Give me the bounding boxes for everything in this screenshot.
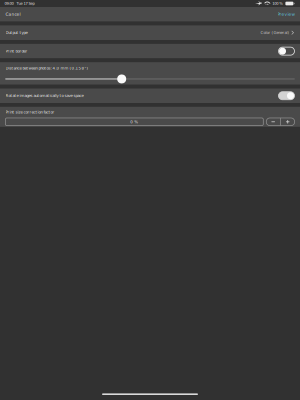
staticText: Cancel [5,12,20,17]
button[interactable]: Increase [281,118,295,126]
button[interactable]: Preview [272,7,300,21]
staticText: Print size correction factor [5,110,54,114]
button[interactable]: Print border [278,47,294,55]
staticText: Print border [5,49,27,53]
button[interactable]: Distance slider [117,74,126,83]
staticText: 100 % [272,1,283,6]
staticText: Color (General) [260,30,289,35]
button[interactable]: Output type [0,25,300,40]
staticText: 09:00 Tue 17 Sep [4,1,34,6]
staticText: Distance between photos: 4.0 mm (0.158") [5,66,88,70]
staticText: Preview [277,12,294,17]
staticText: 0 % [130,119,138,124]
staticText: Output type [5,30,27,35]
button[interactable]: Cancel [0,7,26,21]
button[interactable]: 0 % [5,118,263,126]
staticText: Rotate images automatically to save spac… [5,93,83,98]
button[interactable]: Decrease [266,118,280,126]
button[interactable]: Rotate images automatically [278,92,294,100]
